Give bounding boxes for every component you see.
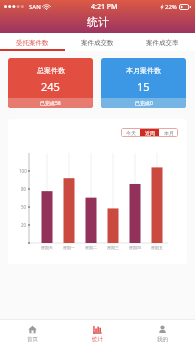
staticText: 星期五 [151, 245, 163, 250]
staticText: 首页 [27, 336, 38, 343]
staticText: 统计 [87, 15, 109, 29]
button[interactable]: 本月案件数 [101, 58, 186, 108]
button[interactable]: 近周 [140, 128, 159, 137]
button[interactable]: 案件成交数 [65, 33, 130, 51]
staticText: 星期天 [41, 245, 53, 250]
staticText: 我的 [157, 336, 168, 343]
staticText: SAN [29, 3, 41, 11]
staticText: 20 [21, 222, 27, 228]
staticText: 本月 [164, 130, 174, 136]
staticText: 星期一 [63, 245, 75, 250]
button[interactable]: 我的 [130, 320, 195, 347]
button[interactable]: 今天 [121, 128, 140, 137]
button[interactable]: 案件成交率 [130, 33, 195, 51]
button[interactable]: 本月 [159, 128, 178, 137]
staticText: 案件成交数 [81, 39, 114, 47]
staticText: 统计 [92, 336, 103, 343]
staticText: 案件成交率 [146, 39, 179, 47]
staticText: 星期三 [107, 245, 119, 250]
staticText: 今天 [126, 130, 136, 136]
staticText: 100 [19, 168, 27, 174]
staticText: 22% [165, 3, 177, 11]
staticText: 80 [21, 186, 27, 192]
staticText: 星期二 [85, 245, 97, 250]
button[interactable]: 首页 [0, 320, 65, 347]
staticText: 已完成58 [40, 100, 61, 107]
staticText: 15 [137, 79, 150, 94]
staticText: 245 [41, 79, 60, 94]
staticText: 4:21 PM [91, 2, 118, 12]
button[interactable]: 受托案件数 [0, 33, 65, 51]
button[interactable]: 统计 [65, 320, 130, 347]
staticText: 星期四 [129, 245, 141, 250]
staticText: 50 [21, 204, 27, 210]
staticText: 近周 [145, 130, 155, 136]
staticText: 受托案件数 [16, 39, 49, 47]
staticText: 本月案件数 [126, 66, 161, 75]
button[interactable]: 总案件数 [8, 58, 93, 108]
staticText: 总案件数 [37, 66, 65, 75]
staticText: 已完成0 [135, 100, 153, 107]
